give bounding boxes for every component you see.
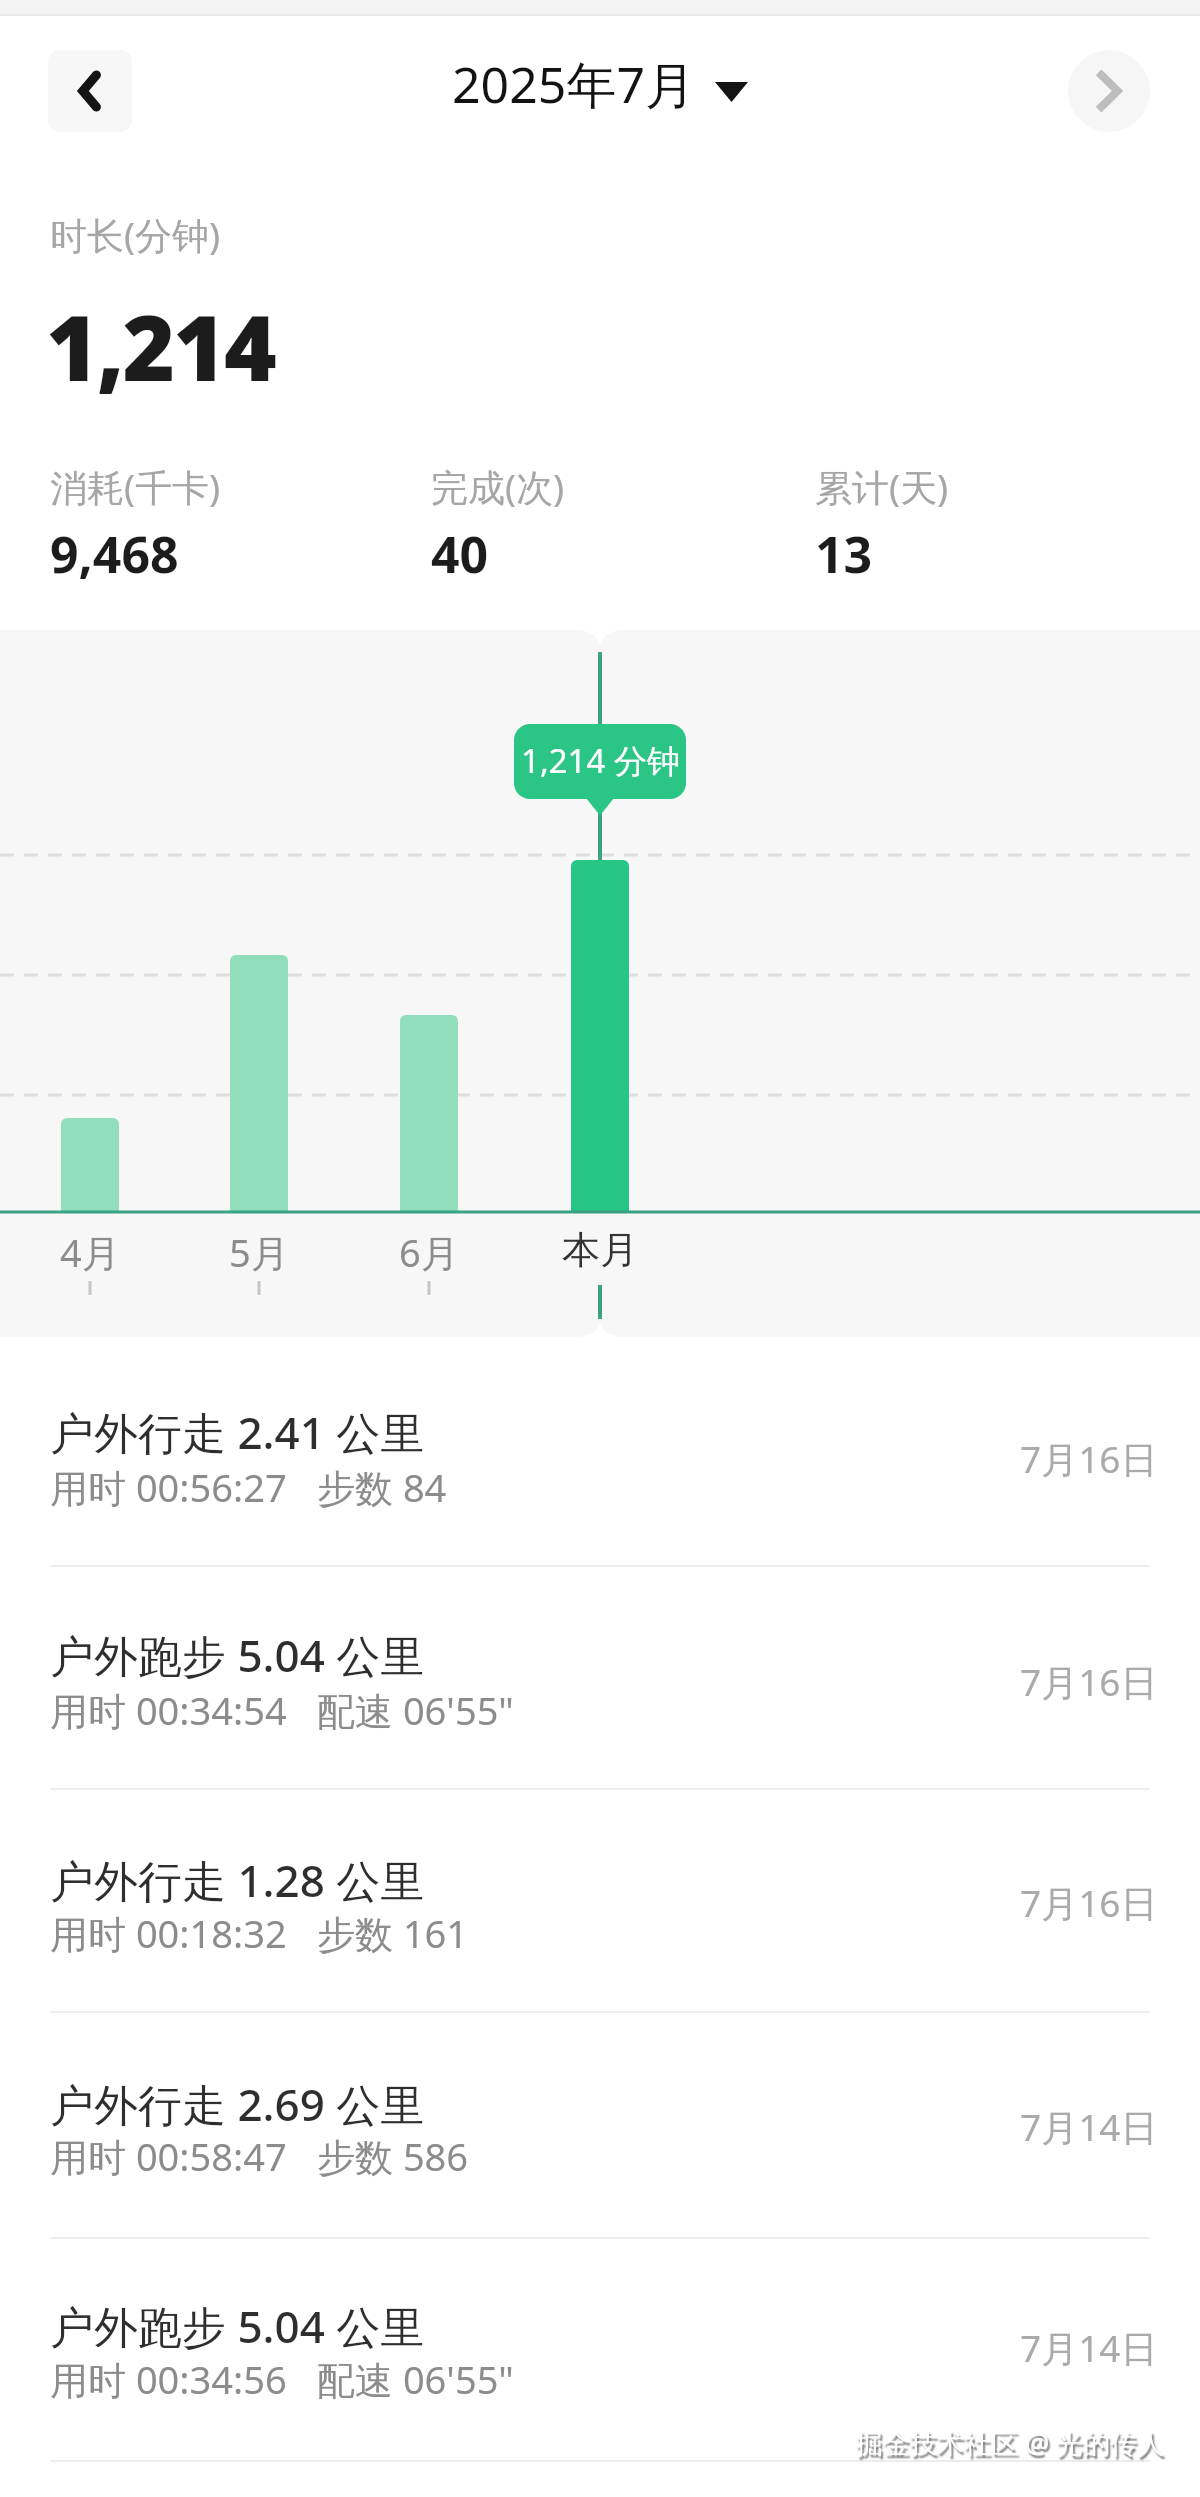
staticText: 7月16日 <box>1020 1433 1158 1484</box>
staticText: 户外行走 2.41 公里 <box>50 1402 425 1462</box>
staticText: 完成(次) <box>431 461 565 512</box>
staticText: 用时 00:34:54 <box>50 1684 287 1736</box>
staticText: 掘金技术社区 @ 光的传人 <box>856 2424 1165 2461</box>
staticText: 户外跑步 5.04 公里 <box>50 1625 425 1685</box>
staticText: 1,214 分钟 <box>521 738 680 783</box>
staticText: 1,214 <box>46 285 275 408</box>
staticText: 5月 <box>229 1226 289 1278</box>
staticText: 户外行走 1.28 公里 <box>50 1850 425 1910</box>
staticText: 配速 06'55" <box>317 2353 514 2405</box>
staticText: 7月14日 <box>1020 2322 1158 2373</box>
staticText: 9,468 <box>50 520 179 588</box>
staticText: 步数 161 <box>317 1907 469 1959</box>
staticText: 用时 00:56:27 <box>50 1461 287 1513</box>
button[interactable] <box>48 50 132 132</box>
button[interactable]: 户外跑步 5.04 公里 <box>0 1603 1200 1803</box>
button[interactable] <box>1068 50 1150 132</box>
button[interactable]: 户外行走 1.28 公里 <box>0 1828 1200 2028</box>
staticText: 7月16日 <box>1020 1877 1158 1928</box>
staticText: 2025年7月 <box>452 50 695 118</box>
button[interactable]: 2025年7月 <box>452 50 748 118</box>
staticText: 7月14日 <box>1020 2101 1158 2152</box>
staticText: 本月 <box>562 1226 638 1274</box>
staticText: 配速 06'55" <box>317 1684 514 1736</box>
staticText: 步数 84 <box>317 1461 447 1513</box>
staticText: 用时 00:34:56 <box>50 2353 287 2405</box>
staticText: 用时 00:58:47 <box>50 2130 287 2182</box>
staticText: 13 <box>815 520 873 588</box>
button[interactable]: 户外行走 2.69 公里 <box>0 2052 1200 2252</box>
staticText: 4月 <box>60 1226 120 1278</box>
staticText: 消耗(千卡) <box>50 461 221 512</box>
staticText: 时长(分钟) <box>50 209 221 260</box>
staticText: 户外跑步 5.04 公里 <box>50 2296 425 2356</box>
staticText: 用时 00:18:32 <box>50 1907 287 1959</box>
staticText: 户外行走 2.69 公里 <box>50 2074 425 2134</box>
button[interactable]: 户外行走 2.41 公里 <box>0 1380 1200 1580</box>
staticText: 6月 <box>399 1226 459 1278</box>
staticText: 7月16日 <box>1020 1656 1158 1707</box>
staticText: 步数 586 <box>317 2130 469 2182</box>
staticText: 40 <box>431 520 489 588</box>
staticText: 累计(天) <box>815 461 949 512</box>
button[interactable]: 户外跑步 5.04 公里 <box>0 2274 1200 2474</box>
